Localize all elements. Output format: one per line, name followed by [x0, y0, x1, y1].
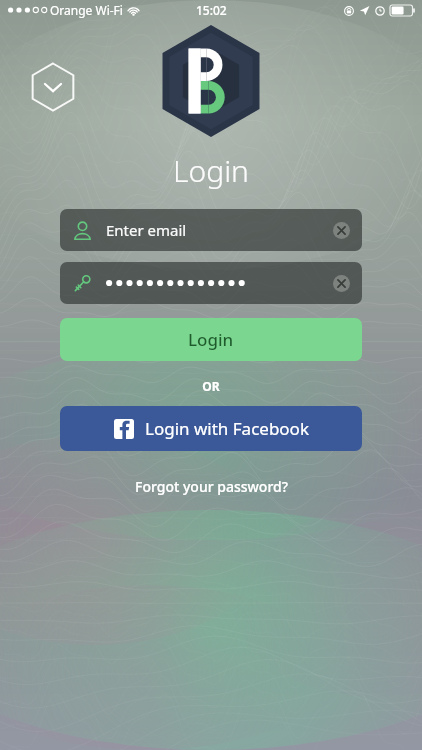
staticText: Orange Wi-Fi [50, 2, 123, 18]
button[interactable]: Collapse [28, 62, 78, 112]
staticText: 15:02 [196, 2, 227, 18]
staticText: Login [188, 328, 234, 351]
staticText: Enter email [106, 220, 187, 240]
staticText: Login with Facebook [145, 417, 309, 440]
button[interactable]: Login [60, 318, 362, 361]
staticText: Login [0, 150, 422, 191]
button[interactable]: Clear [60, 262, 362, 304]
button[interactable]: Clear [333, 222, 350, 239]
button[interactable]: Forgot your password? [60, 471, 362, 502]
staticText: Forgot your password? [135, 477, 288, 496]
staticText: OR [60, 378, 362, 394]
button[interactable]: Enter email [60, 209, 362, 251]
button[interactable]: Clear [333, 275, 350, 292]
button[interactable]: Login with Facebook [60, 406, 362, 451]
